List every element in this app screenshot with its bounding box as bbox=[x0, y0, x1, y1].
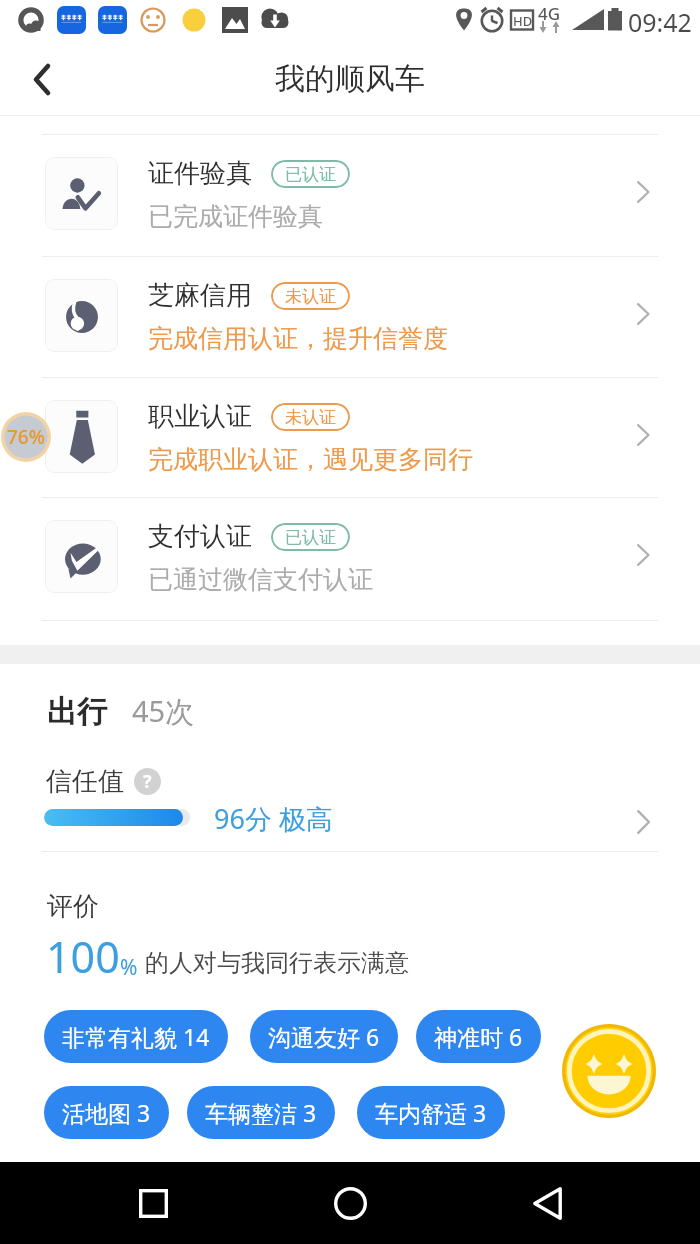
staticText: 完成职业认证，遇见更多同行 bbox=[148, 444, 473, 475]
staticText: 车辆整洁 3 bbox=[205, 1097, 317, 1128]
button[interactable]: 车内舒适 3 bbox=[357, 1086, 505, 1139]
staticText: 的人对与我同行表示满意 bbox=[145, 948, 409, 978]
staticText: 评价 bbox=[47, 890, 99, 923]
staticText: 已认证 bbox=[285, 164, 336, 185]
staticText: HD bbox=[513, 12, 533, 30]
staticText: 支付认证 bbox=[148, 520, 252, 553]
staticText: 车内舒适 3 bbox=[375, 1097, 487, 1128]
staticText: 芝麻信用 bbox=[148, 279, 252, 312]
button[interactable]: 沟通友好 6 bbox=[250, 1010, 398, 1063]
staticText: 100 bbox=[46, 927, 120, 986]
staticText: 96分 极高 bbox=[214, 800, 333, 837]
staticText: 证件验真 bbox=[148, 157, 252, 190]
button[interactable]: 证件验真 bbox=[0, 135, 700, 255]
button[interactable]: 职业认证 bbox=[0, 378, 700, 498]
staticText: ? bbox=[143, 769, 152, 794]
staticText: 神准时 6 bbox=[434, 1021, 523, 1052]
button[interactable]: 神准时 6 bbox=[416, 1010, 541, 1063]
staticText: 76% bbox=[7, 424, 45, 450]
staticText: 已认证 bbox=[285, 527, 336, 548]
staticText: 已完成证件验真 bbox=[148, 201, 323, 232]
staticText: 我的顺风车 bbox=[275, 60, 425, 98]
staticText: 完成信用认证，提升信誉度 bbox=[148, 323, 448, 354]
button[interactable]: 活地图 3 bbox=[44, 1086, 169, 1139]
staticText: 09:42 bbox=[628, 5, 692, 39]
staticText: 出行 bbox=[47, 693, 107, 731]
button[interactable]: 帮助 bbox=[134, 768, 161, 795]
staticText: 活地图 3 bbox=[62, 1097, 151, 1128]
staticText: 信任值 bbox=[46, 765, 124, 798]
button[interactable]: 96分 极高 bbox=[0, 798, 700, 846]
button[interactable]: 主屏幕 bbox=[310, 1162, 390, 1244]
staticText: 沟通友好 6 bbox=[268, 1021, 380, 1052]
button[interactable]: 返回 bbox=[507, 1162, 587, 1244]
staticText: 已通过微信支付认证 bbox=[148, 564, 373, 595]
button[interactable]: 非常有礼貌 14 bbox=[44, 1010, 228, 1063]
staticText: 未认证 bbox=[285, 407, 336, 428]
button[interactable]: 返回 bbox=[0, 50, 80, 115]
button[interactable]: 支付认证 bbox=[0, 498, 700, 618]
button[interactable]: 芝麻信用 bbox=[0, 257, 700, 377]
button[interactable]: 车辆整洁 3 bbox=[187, 1086, 335, 1139]
staticText: 未认证 bbox=[285, 286, 336, 307]
staticText: 4G bbox=[538, 2, 561, 25]
staticText: % bbox=[120, 953, 138, 982]
staticText: 45次 bbox=[132, 691, 195, 731]
staticText: 非常有礼貌 14 bbox=[62, 1021, 210, 1052]
staticText: 职业认证 bbox=[148, 400, 252, 433]
button[interactable]: 最近任务 bbox=[113, 1162, 193, 1244]
